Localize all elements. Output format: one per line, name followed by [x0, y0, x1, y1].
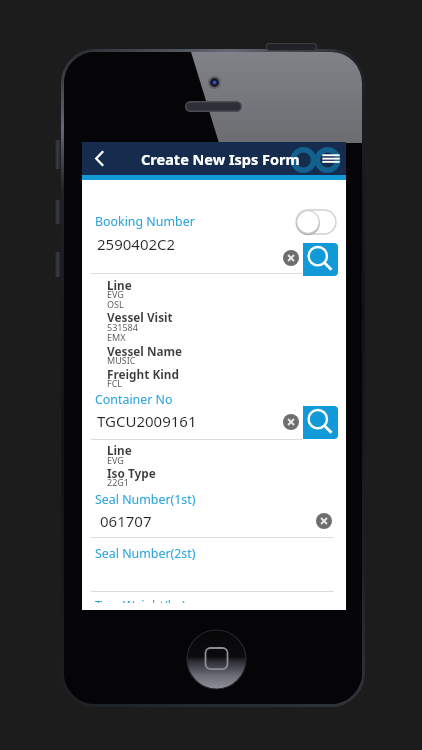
button[interactable]: Menu — [316, 144, 346, 174]
staticText: EMX — [107, 331, 126, 343]
staticText: OSL — [107, 298, 124, 310]
button[interactable]: Clear — [316, 513, 332, 529]
button[interactable]: Search — [303, 406, 338, 439]
staticText: FCL — [107, 377, 123, 389]
button[interactable]: Clear — [283, 250, 299, 266]
staticText: Container No — [95, 391, 173, 408]
staticText: TGCU2009161 — [97, 411, 197, 431]
staticText: Create New Isps Form — [141, 149, 300, 169]
staticText: Tare Weight(kg) — [95, 597, 186, 603]
button[interactable]: Back — [86, 144, 112, 173]
staticText: 2590402C2 — [97, 234, 176, 254]
staticText: Vessel Visit — [107, 309, 173, 325]
staticText: EVG — [107, 288, 124, 300]
staticText: Line — [107, 442, 132, 458]
button[interactable]: Search — [303, 243, 338, 276]
staticText: Line — [107, 277, 132, 293]
staticText: Seal Number(1st) — [95, 491, 196, 508]
staticText: EVG — [107, 454, 124, 466]
staticText: Freight Kind — [107, 366, 179, 382]
staticText: MUSIC — [107, 354, 136, 366]
staticText: Iso Type — [107, 465, 156, 481]
button[interactable]: Clear — [283, 414, 299, 430]
staticText: Seal Number(2st) — [95, 545, 196, 562]
staticText: Vessel Name — [107, 343, 183, 359]
staticText: 531584 — [107, 321, 138, 333]
button[interactable]: Toggle — [296, 210, 336, 234]
staticText: Booking Number — [95, 213, 195, 230]
staticText: 22G1 — [107, 476, 129, 488]
staticText: 061707 — [100, 511, 152, 531]
